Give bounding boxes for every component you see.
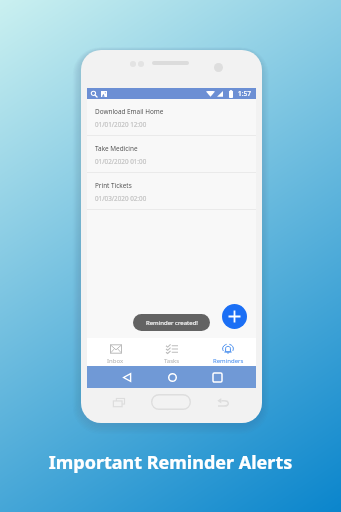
button[interactable]: Home bbox=[166, 371, 178, 383]
button[interactable]: Inbox bbox=[87, 338, 144, 366]
button[interactable]: Back bbox=[121, 371, 133, 383]
button[interactable]: Reminders bbox=[200, 338, 256, 366]
staticText: 01/03/2020 02:00 bbox=[95, 194, 147, 203]
staticText: Important Reminder Alerts bbox=[0, 450, 341, 475]
staticText: Inbox bbox=[107, 357, 124, 365]
button[interactable]: Recent apps bbox=[211, 371, 223, 383]
button[interactable]: Take Medicine bbox=[87, 136, 256, 173]
button[interactable]: Print Tickets bbox=[87, 173, 256, 210]
staticText: 01/01/2020 12:00 bbox=[95, 120, 147, 129]
staticText: Reminder created! bbox=[146, 319, 198, 327]
staticText: Take Medicine bbox=[95, 144, 138, 153]
staticText: Print Tickets bbox=[95, 181, 132, 190]
button[interactable]: Add reminder bbox=[222, 304, 247, 329]
staticText: Download Email Home bbox=[95, 107, 164, 116]
staticText: Tasks bbox=[164, 357, 180, 365]
staticText: 1:57 bbox=[238, 89, 251, 98]
staticText: Reminders bbox=[213, 357, 244, 365]
staticText: 01/02/2020 01:00 bbox=[95, 157, 147, 166]
button[interactable]: Download Email Home bbox=[87, 99, 256, 136]
button[interactable]: Tasks bbox=[144, 338, 200, 366]
